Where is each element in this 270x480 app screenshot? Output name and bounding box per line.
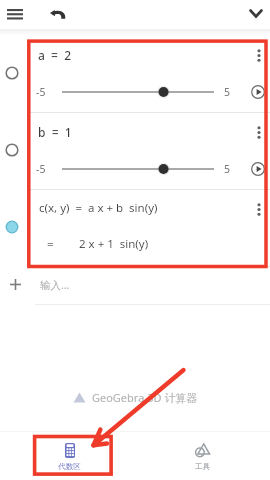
button[interactable]: Menu xyxy=(2,1,28,27)
button[interactable]: Row options xyxy=(250,46,268,64)
staticText: b = 1 xyxy=(38,124,72,140)
button[interactable]: Undo xyxy=(45,1,71,27)
staticText: 输入… xyxy=(40,278,70,292)
button[interactable]: Row options xyxy=(250,123,268,141)
staticText: 工具 xyxy=(195,462,210,471)
staticText: a = 2 xyxy=(38,47,72,63)
button[interactable]: Play animation xyxy=(248,82,268,102)
staticText: 代数区 xyxy=(58,462,81,471)
staticText: 5 xyxy=(224,162,231,176)
staticText: 2 x + 1 sin(y) xyxy=(79,236,149,252)
button[interactable]: 代数区 xyxy=(4,432,135,480)
staticText: -5 xyxy=(36,85,46,99)
staticText: c(x, y) = a x + b sin(y) xyxy=(39,200,158,216)
button[interactable]: 工具 xyxy=(135,432,270,480)
staticText: = xyxy=(47,236,54,252)
button[interactable]: Toggle visibility of c xyxy=(5,220,19,234)
button[interactable]: Row options xyxy=(250,200,268,218)
button[interactable]: 输入… xyxy=(0,272,270,298)
staticText: 5 xyxy=(224,85,231,99)
staticText: -5 xyxy=(36,162,46,176)
button[interactable]: Collapse panel xyxy=(244,1,268,25)
button[interactable]: Toggle visibility of b xyxy=(5,143,19,157)
staticText: GeoGebra 3D 计算器 xyxy=(92,390,198,405)
button[interactable]: Play animation xyxy=(248,159,268,179)
button[interactable]: Toggle visibility of a xyxy=(5,66,19,80)
